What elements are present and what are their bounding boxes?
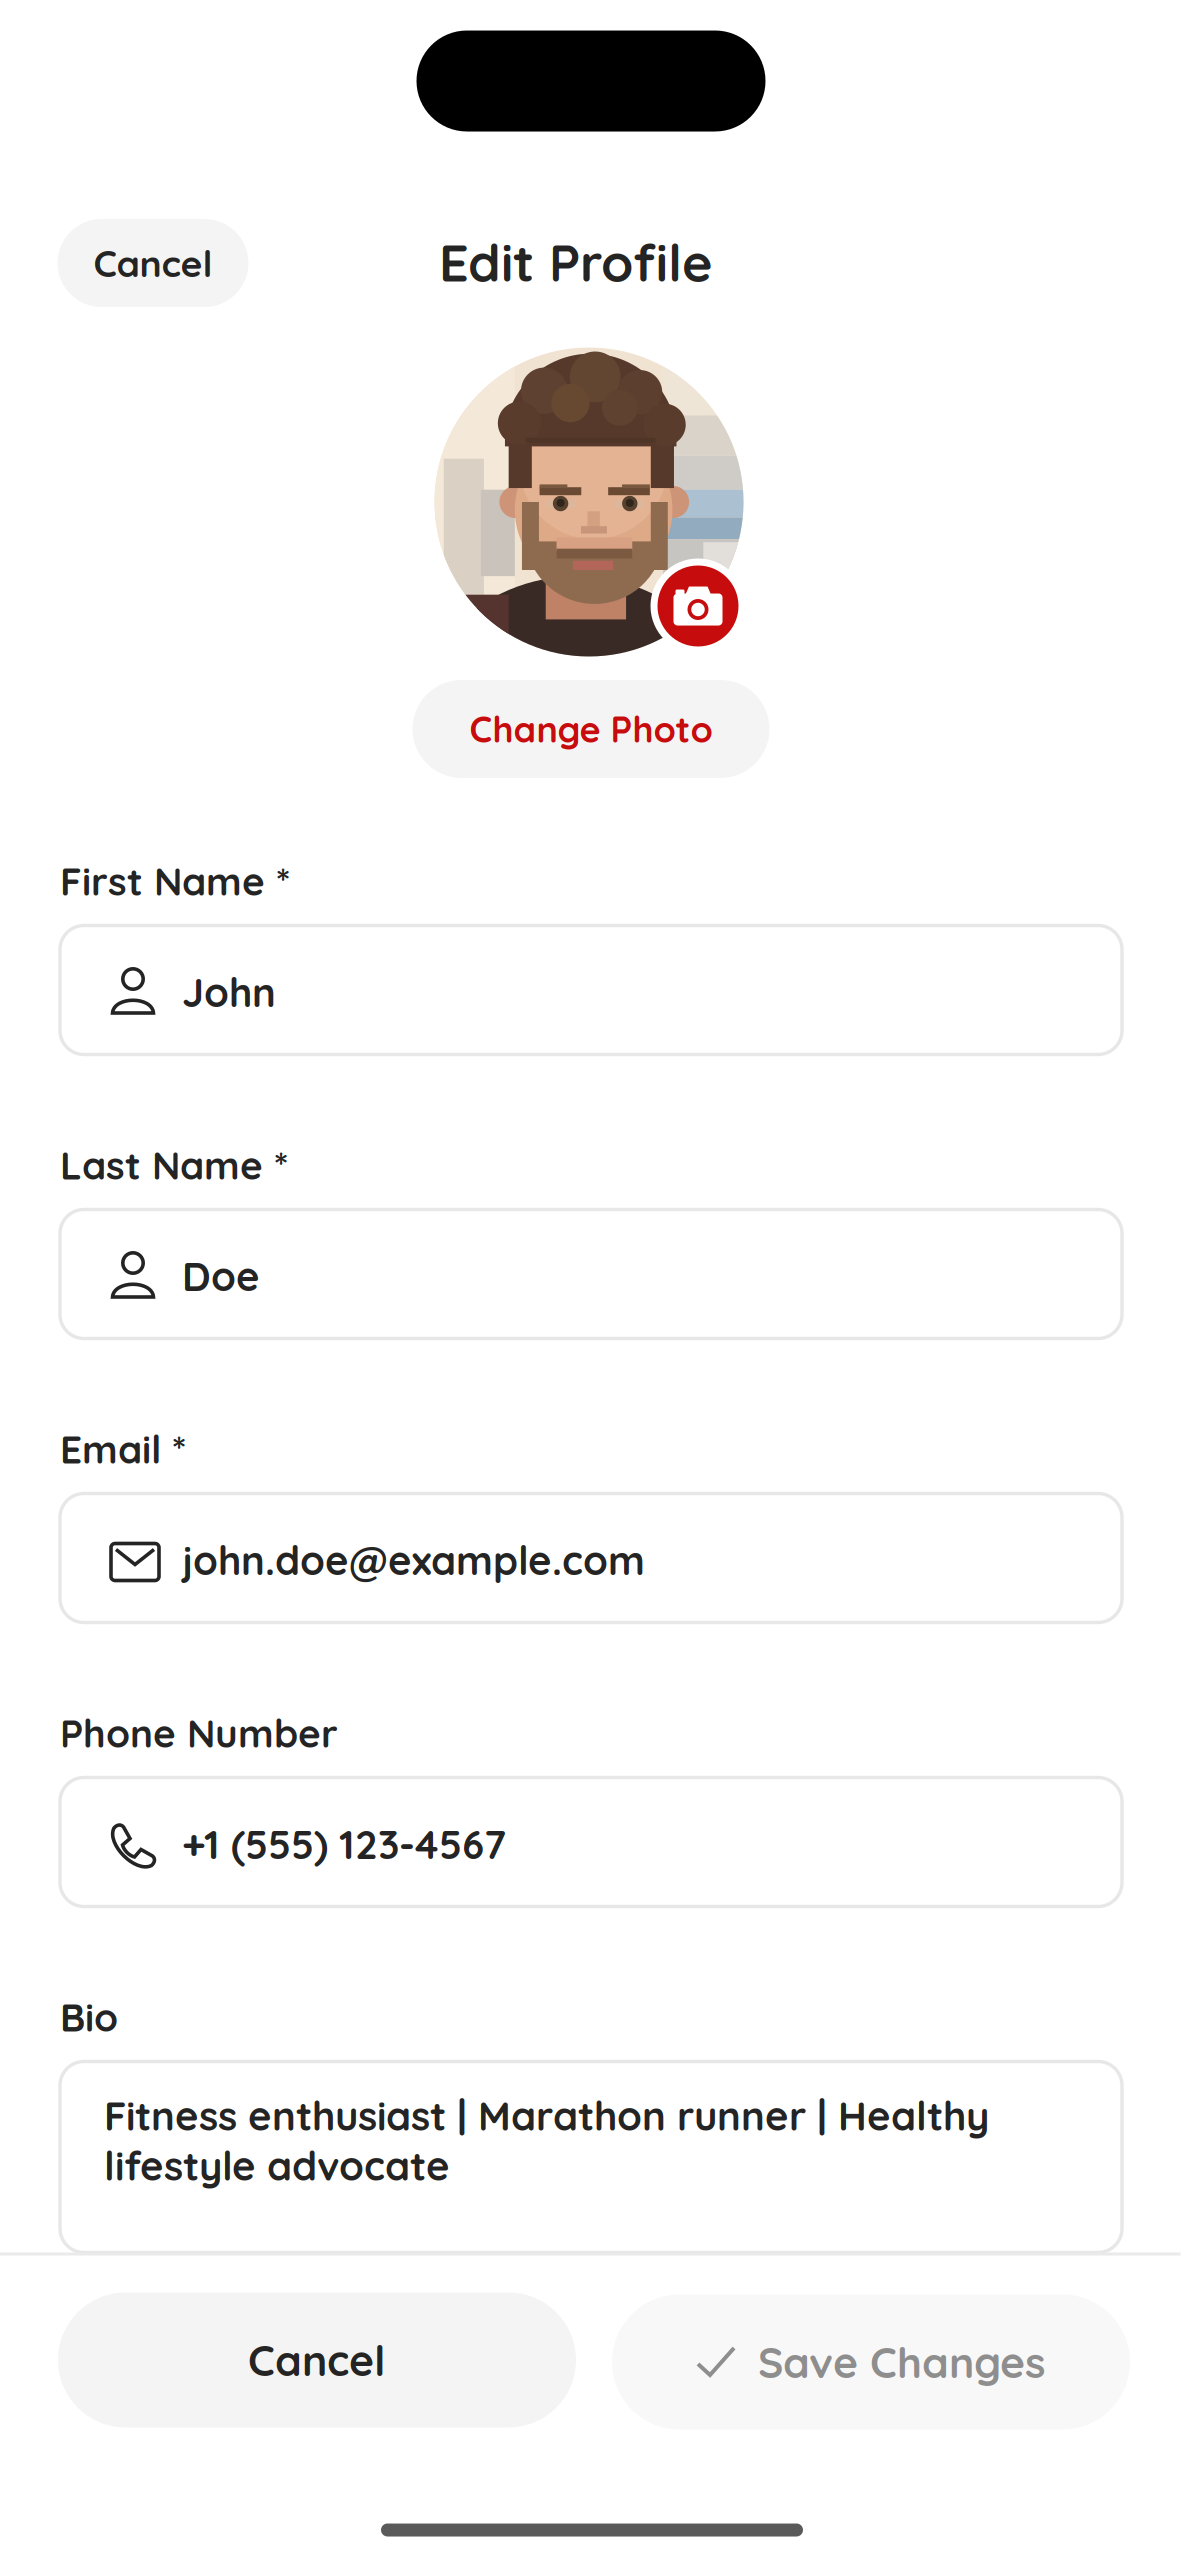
staticText: +1 (555) 123-4567 [182,1819,506,1869]
staticText: john.doe@example.com [182,1535,645,1585]
staticText: First Name * [60,857,290,905]
staticText: Fitness enthusiast | Marathon runner | H… [104,2090,989,2190]
button[interactable]: John [60,925,1122,1054]
staticText: Bio [60,1993,118,2041]
staticText: Cancel [93,240,212,286]
button[interactable]: +1 (555) 123-4567 [60,1777,1122,1906]
button[interactable]: Change Photo [412,680,769,778]
staticText: Cancel [248,2333,386,2387]
staticText: Last Name * [60,1141,288,1189]
staticText: Email * [60,1425,186,1473]
button[interactable]: Doe [60,1209,1122,1338]
staticText: Save Changes [758,2335,1046,2389]
button[interactable]: Save Changes [612,2294,1130,2429]
button[interactable]: Cancel [58,2292,576,2427]
staticText: John [182,967,276,1017]
staticText: Edit Profile [439,229,713,294]
staticText: Doe [182,1251,260,1301]
button[interactable]: Fitness enthusiast | Marathon runner | H… [60,2061,1122,2252]
button[interactable]: Cancel [57,219,248,307]
staticText: Change Photo [469,706,712,751]
button[interactable]: Change profile photo [433,346,745,658]
button[interactable]: john.doe@example.com [60,1493,1122,1622]
staticText: Phone Number [60,1709,338,1757]
